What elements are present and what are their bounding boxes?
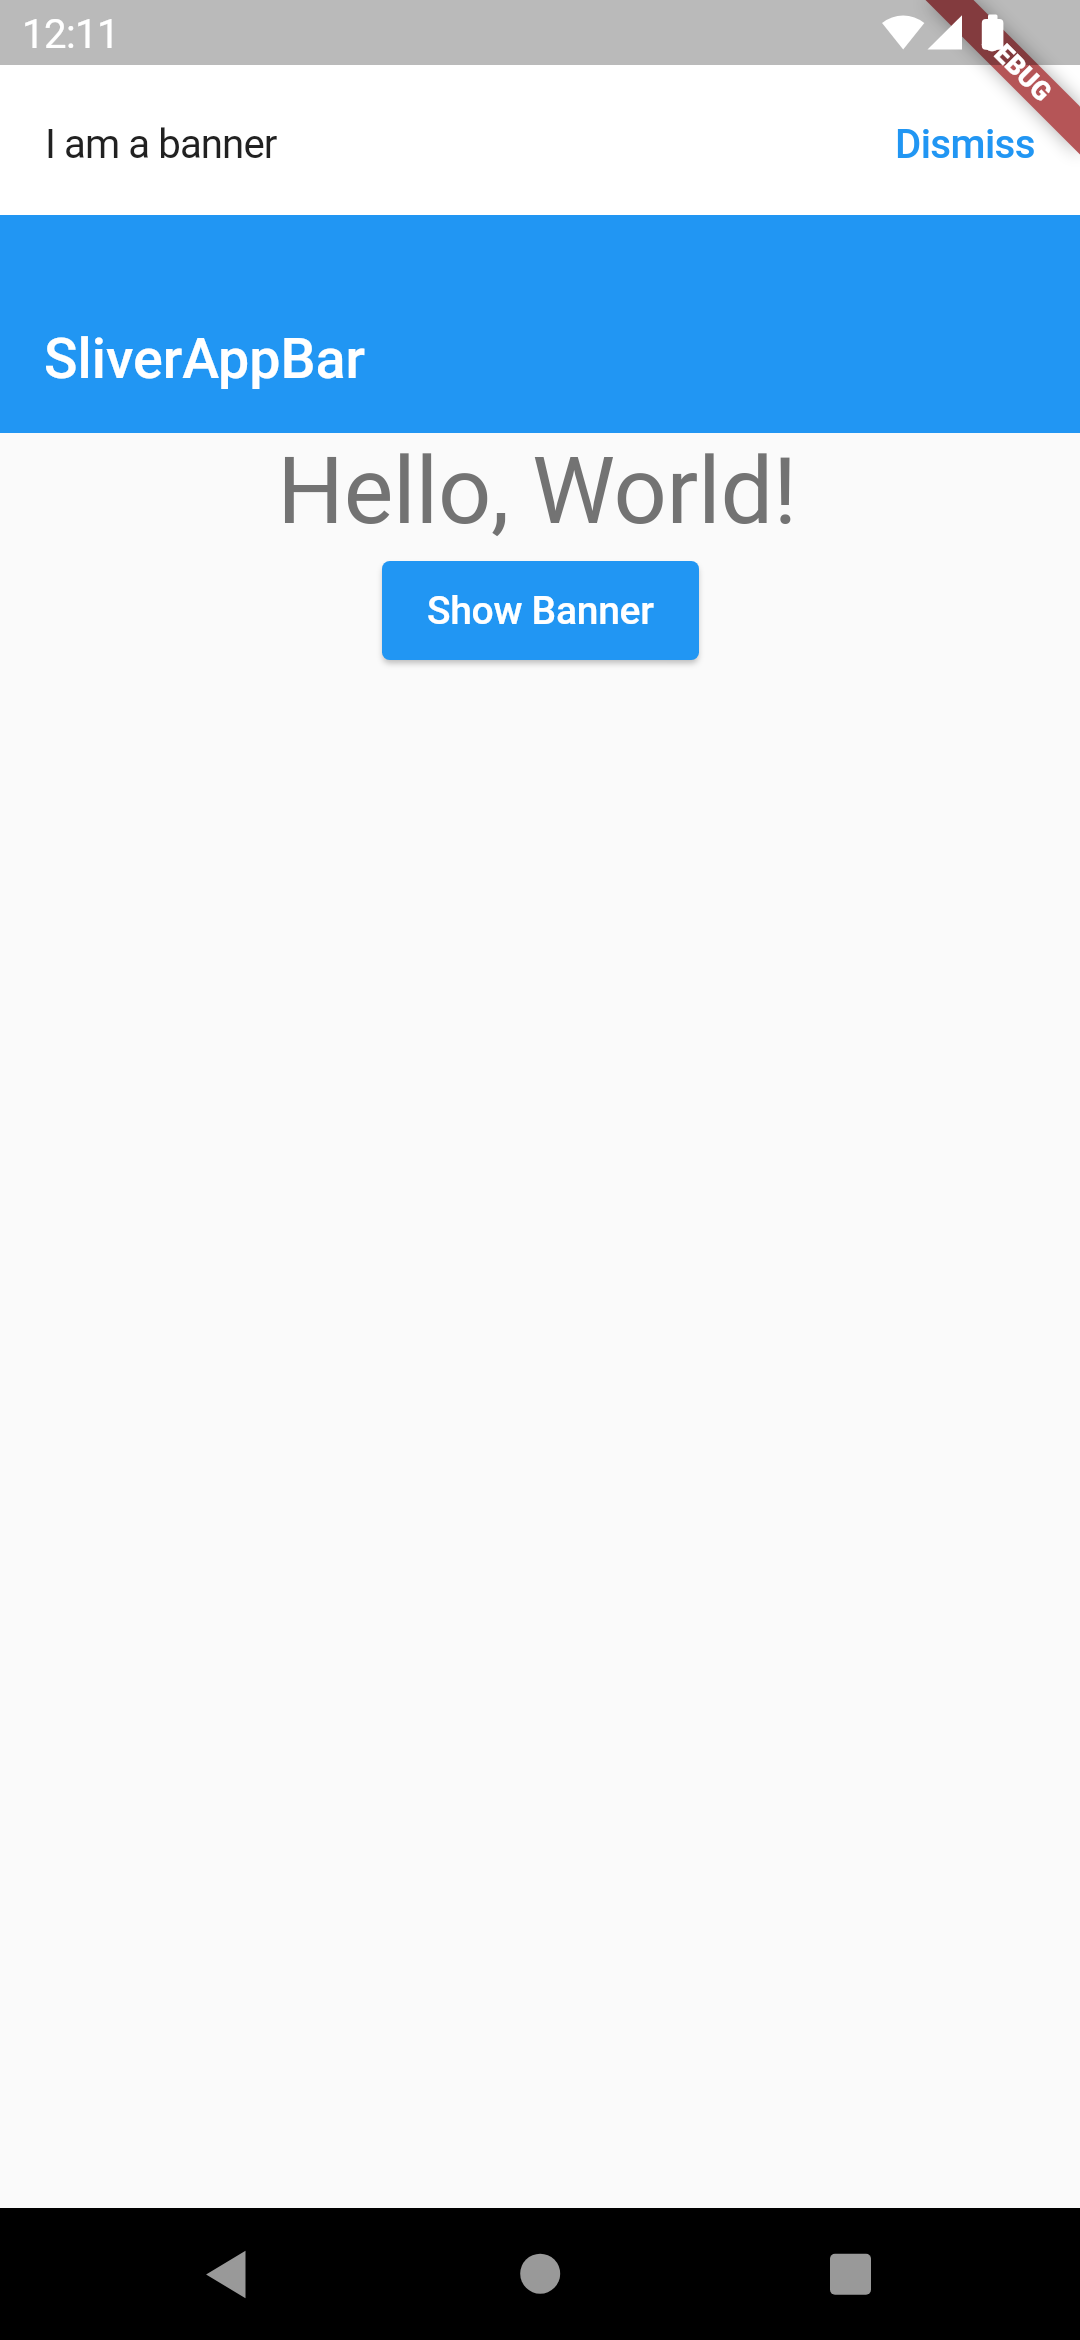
- staticText: I am a banner: [45, 121, 277, 168]
- button[interactable]: Home: [518, 2244, 562, 2304]
- button[interactable]: Back: [206, 2244, 246, 2304]
- staticText: 12:11: [22, 11, 120, 58]
- staticText: Hello, World!: [277, 436, 797, 546]
- button[interactable]: Recents: [828, 2244, 874, 2304]
- staticText: SliverAppBar: [44, 327, 366, 392]
- button[interactable]: Show Banner: [382, 561, 699, 660]
- staticText: Show Banner: [427, 588, 654, 634]
- staticText: Dismiss: [895, 121, 1035, 168]
- button[interactable]: Dismiss: [847, 93, 1080, 188]
